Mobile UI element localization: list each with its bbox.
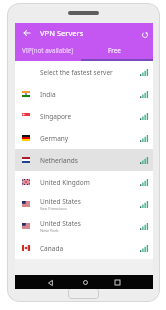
staticText: India	[40, 90, 56, 99]
button[interactable]: Back	[44, 276, 57, 289]
button[interactable]: United Kingdom	[15, 171, 153, 193]
staticText: United States	[40, 197, 81, 206]
button[interactable]: United States	[15, 193, 153, 215]
button[interactable]: Back	[20, 26, 33, 39]
button[interactable]: Netherlands	[15, 149, 153, 171]
button[interactable]: Free	[81, 42, 153, 59]
button[interactable]: VIP(not available)	[15, 42, 81, 59]
staticText: San Francisco	[40, 206, 67, 212]
button[interactable]: Refresh	[139, 29, 151, 41]
staticText: United Kingdom	[40, 178, 90, 187]
button[interactable]: Singapore	[15, 105, 153, 127]
button[interactable]: Select the fastest server	[15, 61, 153, 83]
button[interactable]: Home	[79, 276, 92, 289]
staticText: United States	[40, 219, 81, 228]
staticText: Select the fastest server	[40, 68, 113, 77]
staticText: Singapore	[40, 112, 72, 121]
staticText: New York	[40, 228, 59, 234]
staticText: VPN Servers	[40, 28, 84, 38]
staticText: VIP(not available)	[22, 46, 74, 55]
button[interactable]: Recent apps	[111, 276, 124, 289]
button[interactable]: United States	[15, 215, 153, 237]
staticText: Netherlands	[40, 156, 78, 165]
staticText: Free	[108, 46, 121, 55]
button[interactable]: Canada	[15, 237, 153, 259]
button[interactable]: India	[15, 83, 153, 105]
staticText: Canada	[40, 244, 64, 253]
button[interactable]: Germany	[15, 127, 153, 149]
staticText: Germany	[40, 134, 69, 143]
